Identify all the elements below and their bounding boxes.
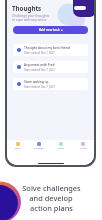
staticText: Home (14, 147, 21, 150)
staticText: action plans (30, 203, 73, 213)
staticText: Argument with Fred (24, 63, 55, 67)
staticText: Date created: Dec 7, 2021 (24, 85, 56, 89)
button[interactable]: Mood (50, 140, 72, 150)
button[interactable]: Thought about my best friend (13, 44, 88, 56)
button[interactable]: Argument with Fred (13, 61, 88, 73)
staticText: Date created: Dec 7, 2021 (24, 68, 56, 72)
staticText: Thoughts (12, 4, 42, 12)
button[interactable]: Profile (72, 140, 94, 150)
staticText: and develop (29, 193, 73, 203)
staticText: Date created: Dec 7, 2021 (24, 51, 56, 55)
staticText: to cope with any stress (12, 18, 47, 22)
button[interactable]: Thoughts (28, 140, 50, 150)
staticText: Challenge your thoughts (12, 14, 50, 18)
button[interactable]: Add new task + (13, 26, 88, 34)
staticText: Thoughts (34, 147, 44, 150)
button[interactable]: Stare waking up (13, 78, 88, 90)
staticText: Add new task + (39, 28, 63, 32)
staticText: Stare waking up (24, 80, 49, 84)
button[interactable]: Home (7, 140, 28, 150)
staticText: Thought about my best friend (24, 46, 70, 50)
staticText: Mood (58, 147, 64, 150)
staticText: Profile (80, 147, 87, 150)
staticText: Solve challenges (22, 183, 81, 193)
